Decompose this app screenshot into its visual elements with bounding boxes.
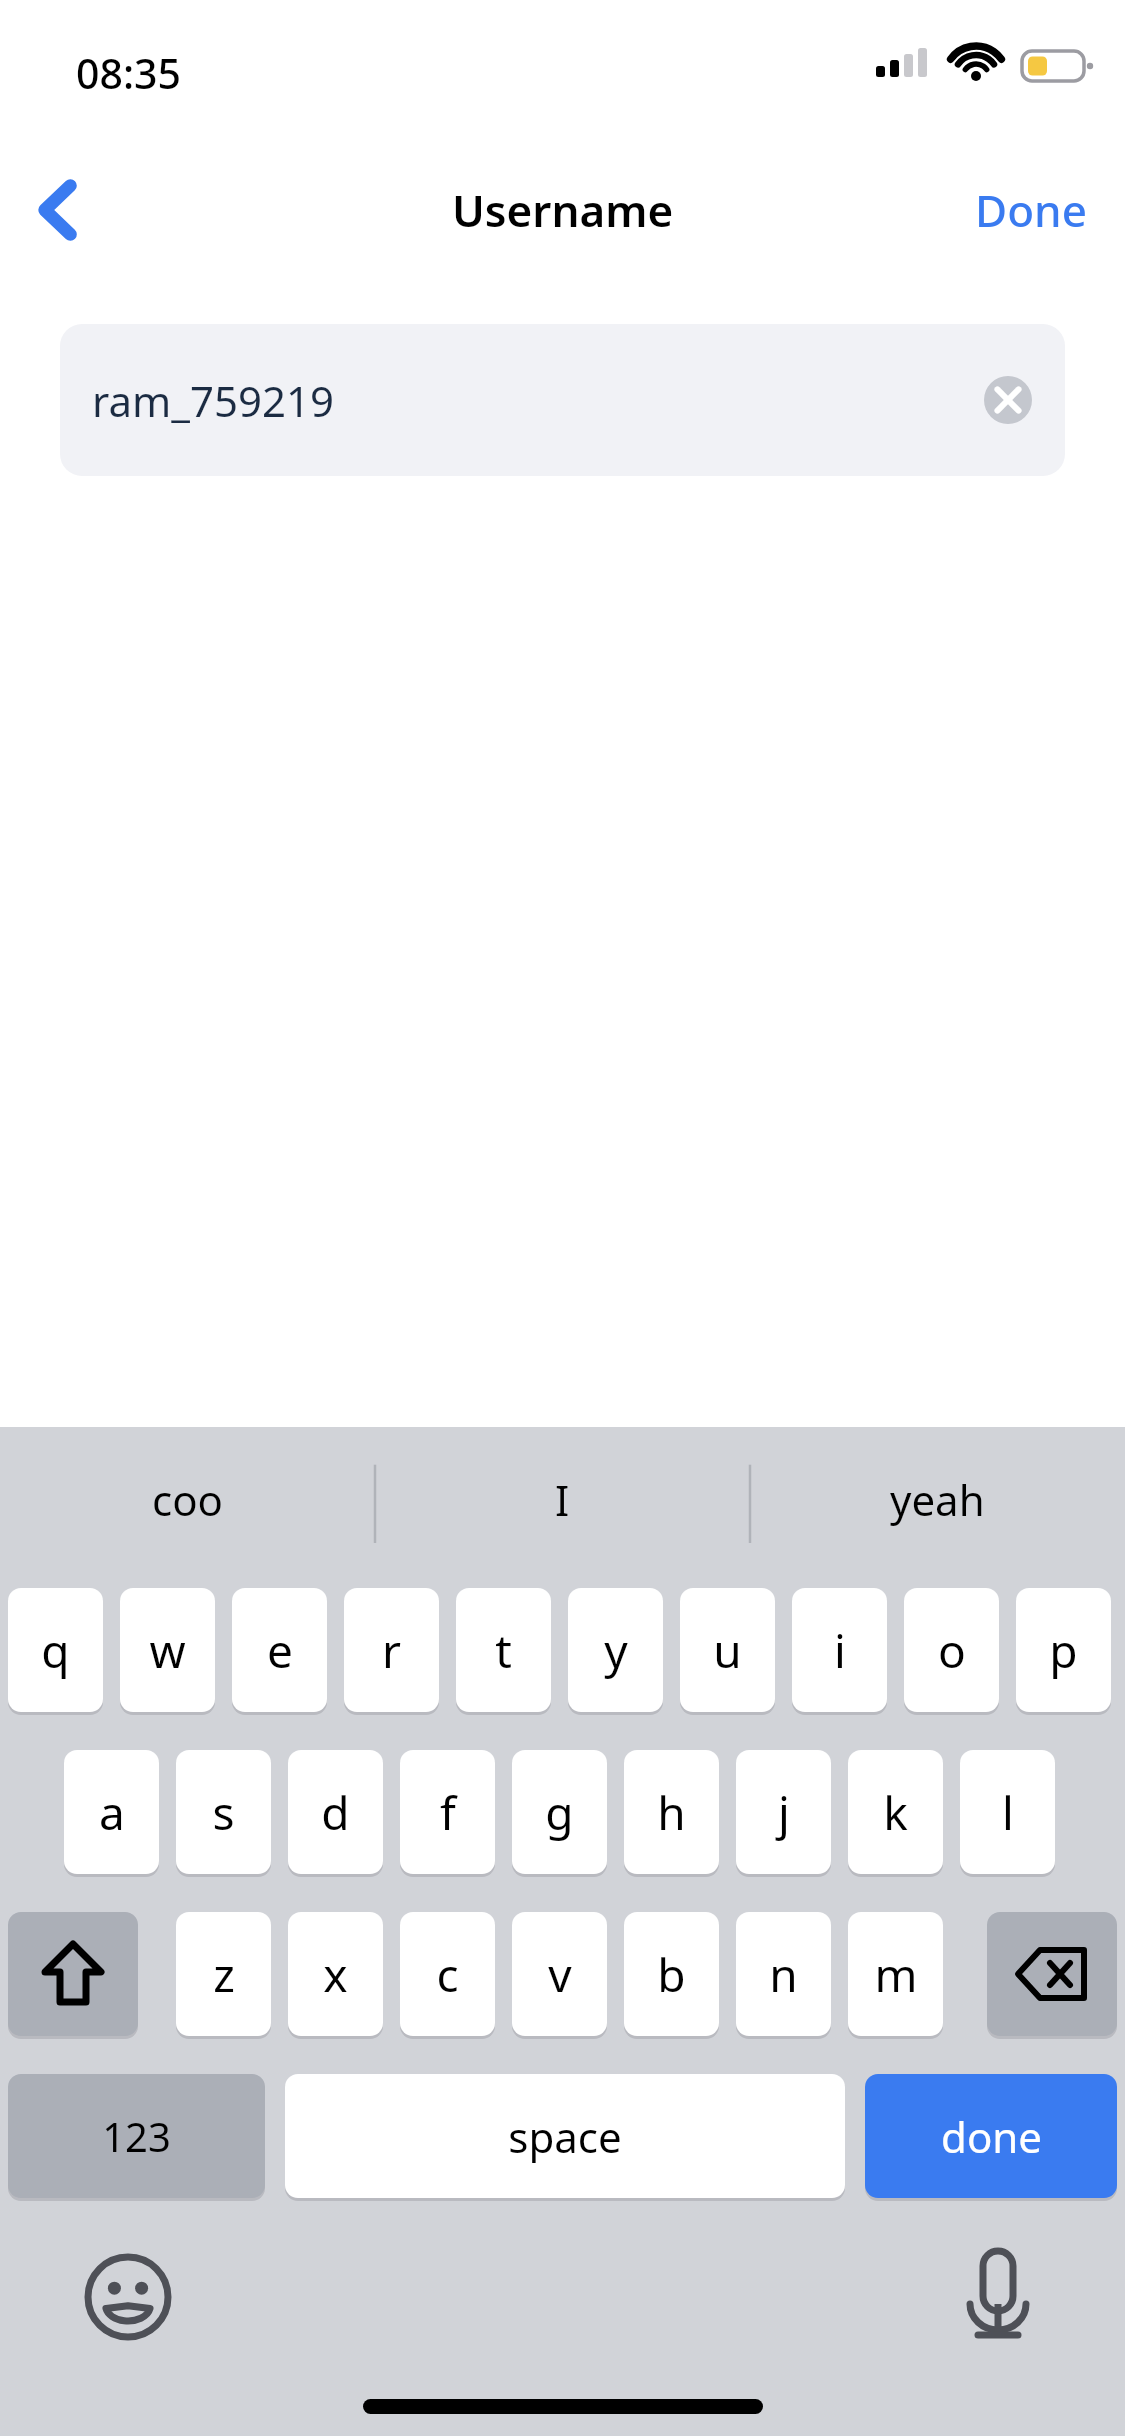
staticText: o [938,1619,966,1682]
button[interactable]: Back [14,166,102,254]
staticText: n [769,1943,798,2006]
staticText: Username [452,180,674,240]
staticText: k [883,1781,908,1844]
staticText: l [1002,1781,1014,1844]
staticText: h [657,1781,686,1844]
button[interactable]: p [1016,1588,1111,1712]
button[interactable]: e [232,1588,327,1712]
button[interactable]: ram_759219 [60,324,1065,476]
button[interactable]: m [848,1912,943,2036]
staticText: r [382,1619,401,1682]
staticText: u [713,1619,742,1682]
button[interactable]: yeah [750,1427,1125,1572]
button[interactable]: Emoji [78,2247,178,2347]
button[interactable]: v [512,1912,607,2036]
button[interactable]: o [904,1588,999,1712]
staticText: p [1049,1619,1078,1682]
button[interactable]: j [736,1750,831,1874]
button[interactable]: s [176,1750,271,1874]
staticText: coo [152,1471,223,1528]
button[interactable]: I [375,1427,750,1572]
staticText: 08:35 [76,45,181,101]
staticText: d [321,1781,350,1844]
staticText: a [99,1781,125,1844]
button[interactable]: k [848,1750,943,1874]
button[interactable]: Dictation [948,2247,1048,2347]
button[interactable]: done [865,2074,1117,2198]
staticText: g [545,1781,574,1844]
staticText: Done [975,180,1087,240]
staticText: j [778,1781,790,1844]
staticText: y [604,1619,628,1682]
button[interactable]: Shift [8,1912,138,2036]
staticText: e [267,1619,293,1682]
staticText: w [149,1619,186,1682]
staticText: b [657,1943,686,2006]
button[interactable]: c [400,1912,495,2036]
button[interactable]: y [568,1588,663,1712]
staticText: ram_759219 [92,372,335,429]
button[interactable]: f [400,1750,495,1874]
button[interactable]: a [64,1750,159,1874]
button[interactable]: l [960,1750,1055,1874]
button[interactable]: space [285,2074,845,2198]
staticText: 123 [102,2109,171,2163]
staticText: c [436,1943,459,2006]
staticText: x [323,1943,348,2006]
button[interactable]: Done [975,180,1087,240]
button[interactable]: w [120,1588,215,1712]
button[interactable]: coo [0,1427,375,1572]
button[interactable]: d [288,1750,383,1874]
button[interactable]: h [624,1750,719,1874]
staticText: s [212,1781,235,1844]
staticText: q [41,1619,70,1682]
staticText: t [495,1619,512,1682]
button[interactable]: n [736,1912,831,2036]
staticText: v [548,1943,572,2006]
button[interactable]: u [680,1588,775,1712]
button[interactable]: r [344,1588,439,1712]
staticText: I [555,1471,570,1528]
button[interactable]: Backspace [987,1912,1117,2036]
button[interactable]: i [792,1588,887,1712]
staticText: space [508,2108,622,2165]
staticText: f [440,1781,456,1844]
button[interactable]: q [8,1588,103,1712]
button[interactable]: z [176,1912,271,2036]
button[interactable]: b [624,1912,719,2036]
staticText: i [834,1619,846,1682]
staticText: done [941,2108,1042,2165]
staticText: z [213,1943,235,2006]
button[interactable]: x [288,1912,383,2036]
button[interactable]: g [512,1750,607,1874]
staticText: m [874,1943,918,2006]
button[interactable]: t [456,1588,551,1712]
button[interactable]: Clear text [973,365,1043,435]
button[interactable]: 123 [8,2074,265,2198]
staticText: yeah [890,1471,985,1528]
